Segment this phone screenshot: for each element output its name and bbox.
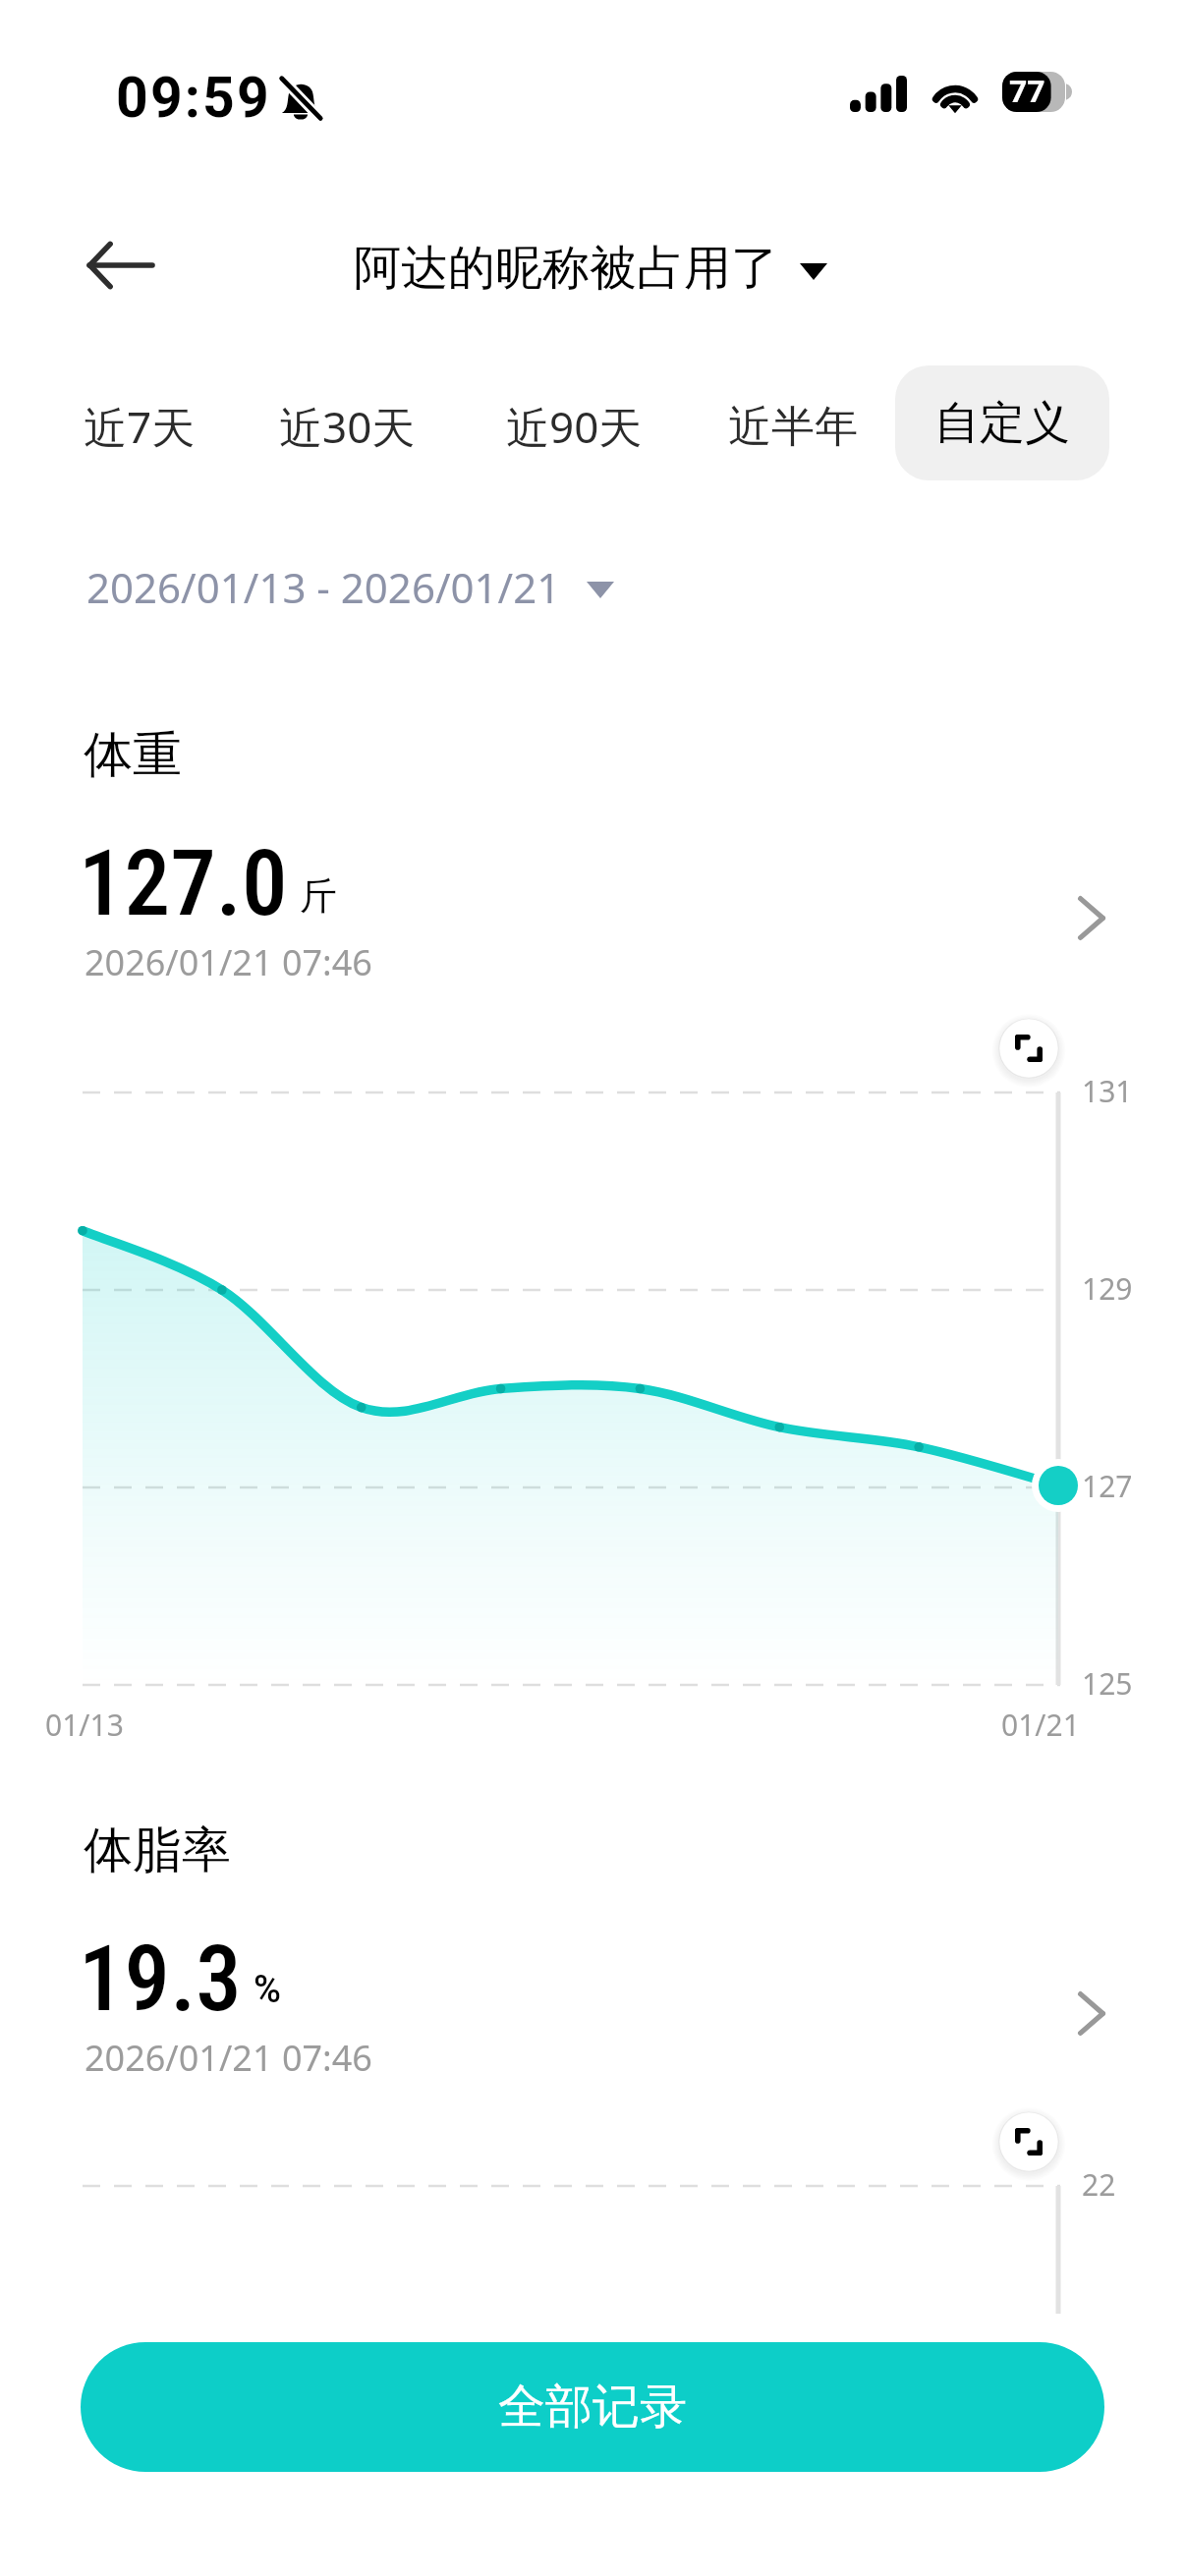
staticText: 129	[1082, 1268, 1133, 1309]
button[interactable]: 体重	[0, 731, 1185, 990]
button[interactable]: 近30天	[254, 375, 441, 477]
staticText: 近7天	[84, 397, 196, 456]
staticText: 2026/01/21 07:46	[85, 938, 372, 986]
staticText: 127	[1082, 1466, 1133, 1506]
button[interactable]: Expand chart	[989, 1009, 1068, 1088]
staticText: 125	[1082, 1663, 1133, 1704]
staticText: 阿达的昵称被占用了	[354, 239, 778, 298]
staticText: 77	[1009, 73, 1045, 110]
staticText: 体脂率	[84, 1820, 231, 1881]
staticText: %	[254, 1968, 281, 2012]
staticText: 自定义	[934, 395, 1070, 452]
staticText: 127.0	[79, 830, 288, 937]
button[interactable]: Expand chart	[989, 2102, 1068, 2181]
staticText: 体重	[84, 724, 182, 786]
button[interactable]: 近90天	[480, 375, 668, 477]
button[interactable]: Back	[77, 222, 163, 308]
staticText: 近30天	[279, 397, 416, 456]
staticText: 131	[1082, 1071, 1133, 1111]
button[interactable]: 近半年	[703, 375, 883, 477]
button[interactable]: 全部记录	[81, 2342, 1104, 2472]
staticText: 01/13	[45, 1705, 124, 1745]
button[interactable]: 阿达的昵称被占用了	[354, 239, 827, 298]
staticText: 2026/01/13 - 2026/01/21	[86, 559, 561, 615]
staticText: 09:59	[116, 65, 271, 131]
button[interactable]: 体脂率	[0, 1826, 1185, 2086]
staticText: 全部记录	[498, 2378, 687, 2436]
staticText: 19.3	[79, 1926, 242, 2033]
staticText: 斤	[300, 872, 337, 920]
staticText: 2026/01/21 07:46	[85, 2034, 372, 2082]
button[interactable]: 近7天	[58, 375, 221, 477]
staticText: 近90天	[506, 397, 643, 456]
staticText: 近半年	[728, 400, 858, 454]
button[interactable]: 自定义	[895, 365, 1109, 480]
button[interactable]: 2026/01/13 - 2026/01/21	[86, 559, 614, 615]
staticText: 01/21	[1001, 1705, 1080, 1745]
staticText: 22	[1082, 2164, 1116, 2205]
